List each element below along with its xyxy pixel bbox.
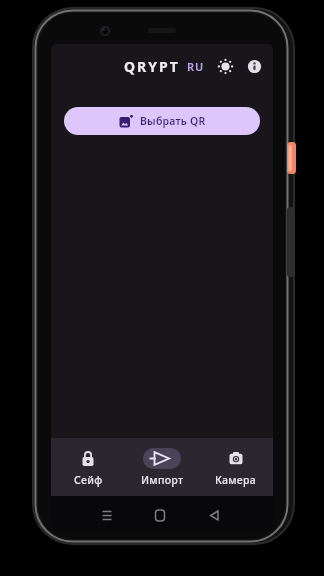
staticText: Выбрать QR — [140, 114, 206, 128]
button[interactable]: Импорт — [125, 438, 199, 496]
button[interactable]: Выбрать QR — [64, 107, 260, 135]
staticText: RU — [187, 59, 205, 74]
button[interactable] — [217, 58, 234, 75]
button[interactable] — [247, 59, 262, 74]
button[interactable]: Сейф — [51, 438, 125, 496]
staticText: QRYPT — [124, 57, 180, 76]
button[interactable]: Камера — [199, 438, 273, 496]
staticText: Сейф — [74, 473, 103, 487]
staticText: Импорт — [141, 473, 184, 487]
staticText: Камера — [215, 473, 257, 487]
